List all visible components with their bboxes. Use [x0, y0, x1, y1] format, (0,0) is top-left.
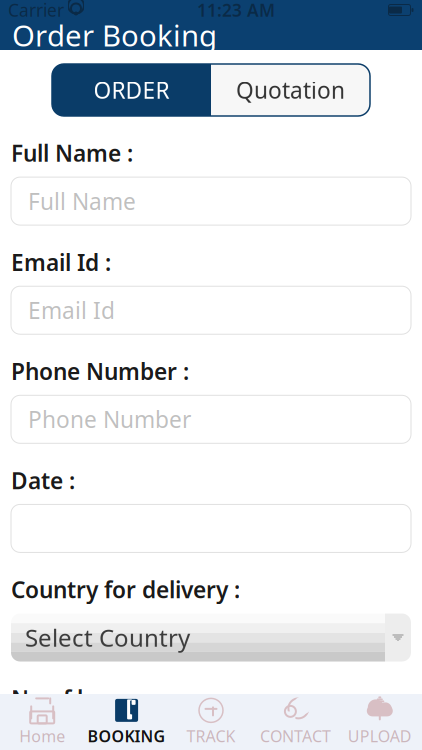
staticText: TRACK [186, 725, 235, 747]
staticText: Country for delivery : [11, 574, 240, 604]
button[interactable]: ORDER [52, 64, 211, 116]
button[interactable]: TRACK [169, 694, 253, 750]
staticText: CONTACT [260, 725, 331, 747]
staticText: 11:23 AM [197, 0, 275, 21]
staticText: Phone Number [28, 404, 191, 434]
button[interactable]: Quotation [211, 64, 370, 116]
staticText: Email Id : [11, 247, 111, 277]
button[interactable]: Home [0, 694, 84, 750]
staticText: Full Name [28, 186, 136, 216]
staticText: UPLOAD [348, 725, 412, 747]
button[interactable]: Email Id [11, 286, 411, 334]
button[interactable]: Full Name [11, 177, 411, 225]
staticText: No of box : [11, 683, 130, 714]
staticText: ORDER [93, 75, 169, 105]
staticText: Home [19, 725, 65, 747]
staticText: Email Id [28, 295, 115, 325]
staticText: Quotation [236, 75, 345, 105]
button[interactable]: UPLOAD [338, 694, 422, 750]
button[interactable] [11, 723, 411, 750]
button[interactable]: Phone Number [11, 395, 411, 443]
staticText: Select Country [25, 622, 190, 653]
staticText: Phone Number : [11, 356, 189, 386]
staticText: Full Name : [11, 138, 133, 168]
staticText: Order Booking [12, 15, 217, 54]
staticText: Date : [11, 465, 75, 495]
staticText: BOOKING [88, 725, 166, 747]
button[interactable] [11, 504, 411, 552]
button[interactable]: CONTACT [253, 694, 338, 750]
button[interactable]: BOOKING [84, 694, 169, 750]
button[interactable]: Select Country [11, 613, 411, 661]
staticText: Carrier [8, 0, 64, 21]
